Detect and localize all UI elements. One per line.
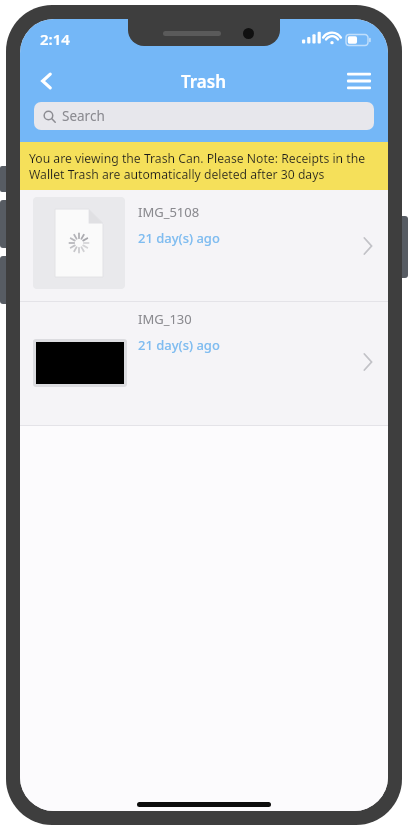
staticText: 2:14	[40, 29, 70, 49]
staticText: 21 day(s) ago	[138, 229, 220, 247]
button[interactable]: Back	[26, 61, 68, 101]
button[interactable]: IMG_130	[20, 302, 388, 413]
staticText: 21 day(s) ago	[138, 336, 220, 354]
staticText: You are viewing the Trash Can. Please No…	[29, 150, 380, 182]
staticText: Trash	[181, 70, 227, 93]
button[interactable]: Search	[34, 102, 374, 130]
button[interactable]: IMG_5108	[20, 190, 388, 301]
staticText: Search	[62, 107, 105, 125]
button[interactable]: Menu	[338, 61, 380, 101]
staticText: IMG_130	[138, 310, 192, 328]
staticText: IMG_5108	[138, 203, 200, 221]
